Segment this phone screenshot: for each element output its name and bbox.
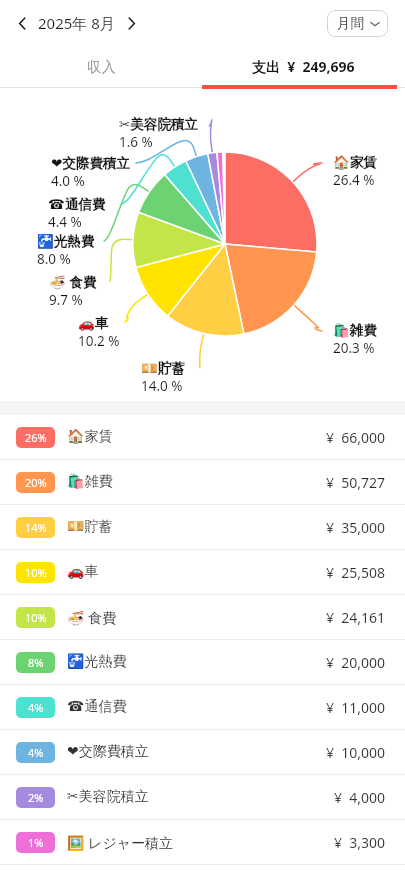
staticText: ¥ 11,000 <box>326 698 386 717</box>
staticText: 8% <box>28 655 44 670</box>
staticText: ¥ 4,000 <box>334 788 386 807</box>
staticText: 4% <box>28 700 44 715</box>
staticText: 10% <box>25 610 47 625</box>
staticText: ❤️交際費積立 <box>51 155 130 172</box>
button[interactable]: 支出 ¥ 249,696 <box>202 46 405 91</box>
staticText: 4.0 % <box>51 172 85 190</box>
button[interactable]: 1% <box>0 820 405 864</box>
staticText: 20.3 % <box>333 339 375 357</box>
staticText: 🏠家賃 <box>67 428 113 446</box>
staticText: 収入 <box>87 58 116 76</box>
staticText: ¥ 24,161 <box>326 608 386 627</box>
staticText: 支出 ¥ 249,696 <box>252 57 355 76</box>
staticText: 9.7 % <box>49 291 83 309</box>
button[interactable]: 4% <box>0 730 405 774</box>
button[interactable]: 8% <box>0 640 405 684</box>
staticText: 🚗車 <box>67 563 99 581</box>
staticText: 10% <box>25 565 47 580</box>
staticText: 🛍️雑費 <box>67 473 113 491</box>
staticText: 20% <box>25 475 47 490</box>
staticText: 4.4 % <box>48 213 82 231</box>
button[interactable]: 14% <box>0 505 405 549</box>
staticText: 🍜 食費 <box>67 608 117 627</box>
staticText: 💴貯蓄 <box>141 360 185 377</box>
button[interactable]: 2% <box>0 775 405 819</box>
staticText: ¥ 3,300 <box>334 833 386 852</box>
staticText: 4% <box>28 745 44 760</box>
staticText: ¥ 25,508 <box>326 563 386 582</box>
staticText: ¥ 35,000 <box>326 518 386 537</box>
staticText: 🛍️雑費 <box>333 322 377 339</box>
staticText: ¥ 10,000 <box>326 743 386 762</box>
staticText: 2025年 8月 <box>38 13 115 33</box>
staticText: ☎️通信費 <box>48 196 106 213</box>
button[interactable]: 10% <box>0 595 405 639</box>
staticText: 月間 <box>337 15 364 32</box>
button[interactable]: 月間 <box>327 10 388 37</box>
staticText: 💴貯蓄 <box>67 518 113 536</box>
staticText: 1% <box>28 835 44 850</box>
staticText: 26% <box>25 430 47 445</box>
staticText: ¥ 66,000 <box>326 428 386 447</box>
staticText: ✂️美容院積立 <box>67 788 149 806</box>
button[interactable]: Next month <box>115 7 147 39</box>
staticText: 🏠家賃 <box>333 154 377 171</box>
staticText: ✂️美容院積立 <box>119 116 198 133</box>
staticText: ☎️通信費 <box>67 698 127 716</box>
staticText: 🚰光熱費 <box>37 233 95 250</box>
button[interactable]: 26% <box>0 415 405 459</box>
button[interactable]: 10% <box>0 550 405 594</box>
staticText: ¥ 50,727 <box>326 473 386 492</box>
staticText: 2% <box>28 790 44 805</box>
staticText: 🍜 食費 <box>49 273 97 291</box>
staticText: 🚰光熱費 <box>67 653 127 671</box>
staticText: 26.4 % <box>333 171 375 189</box>
staticText: ¥ 20,000 <box>326 653 386 672</box>
staticText: ❤️交際費積立 <box>67 743 149 761</box>
staticText: 🖼️ レジャー積立 <box>67 833 174 852</box>
staticText: 14% <box>25 520 47 535</box>
staticText: 1.6 % <box>119 133 153 151</box>
button[interactable]: Previous month <box>6 7 38 39</box>
staticText: 10.2 % <box>78 332 120 350</box>
staticText: 🚗車 <box>78 315 109 332</box>
staticText: 14.0 % <box>141 377 183 395</box>
button[interactable]: 収入 <box>0 46 202 91</box>
staticText: 8.0 % <box>37 250 71 268</box>
button[interactable]: 4% <box>0 685 405 729</box>
button[interactable]: 20% <box>0 460 405 504</box>
